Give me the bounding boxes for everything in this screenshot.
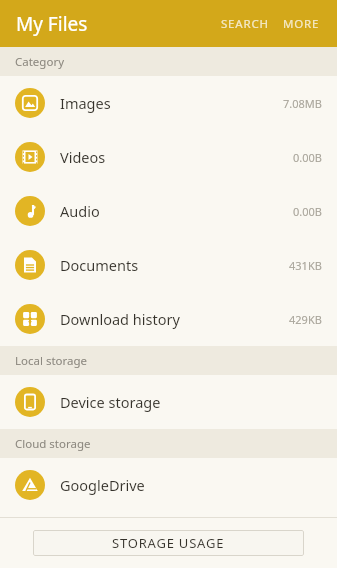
staticText: MORE xyxy=(283,16,320,32)
button[interactable]: SEARCH xyxy=(214,7,276,41)
staticText: Cloud storage xyxy=(15,436,91,452)
staticText: 0.00B xyxy=(293,150,322,165)
button[interactable]: Images xyxy=(0,76,337,130)
staticText: Device storage xyxy=(60,392,161,412)
staticText: Download history xyxy=(60,309,180,329)
staticText: STORAGE USAGE xyxy=(112,534,225,552)
button[interactable]: Audio xyxy=(0,184,337,238)
button[interactable]: Device storage xyxy=(0,375,337,429)
button[interactable]: Download history xyxy=(0,292,337,346)
staticText: Documents xyxy=(60,255,139,275)
button[interactable]: Documents xyxy=(0,238,337,292)
staticText: 431KB xyxy=(289,258,322,273)
staticText: Category xyxy=(15,54,65,70)
button[interactable]: Videos xyxy=(0,130,337,184)
staticText: Local storage xyxy=(15,353,88,369)
staticText: My Files xyxy=(16,11,88,37)
staticText: 0.00B xyxy=(293,204,322,219)
staticText: Images xyxy=(60,93,111,113)
staticText: Audio xyxy=(60,201,100,221)
staticText: GoogleDrive xyxy=(60,475,145,495)
staticText: SEARCH xyxy=(221,16,269,32)
staticText: 429KB xyxy=(289,312,322,327)
staticText: 7.08MB xyxy=(283,96,322,111)
staticText: Videos xyxy=(60,147,106,167)
button[interactable]: MORE xyxy=(276,7,327,41)
button[interactable]: STORAGE USAGE xyxy=(33,530,304,556)
button[interactable]: GoogleDrive xyxy=(0,458,337,512)
